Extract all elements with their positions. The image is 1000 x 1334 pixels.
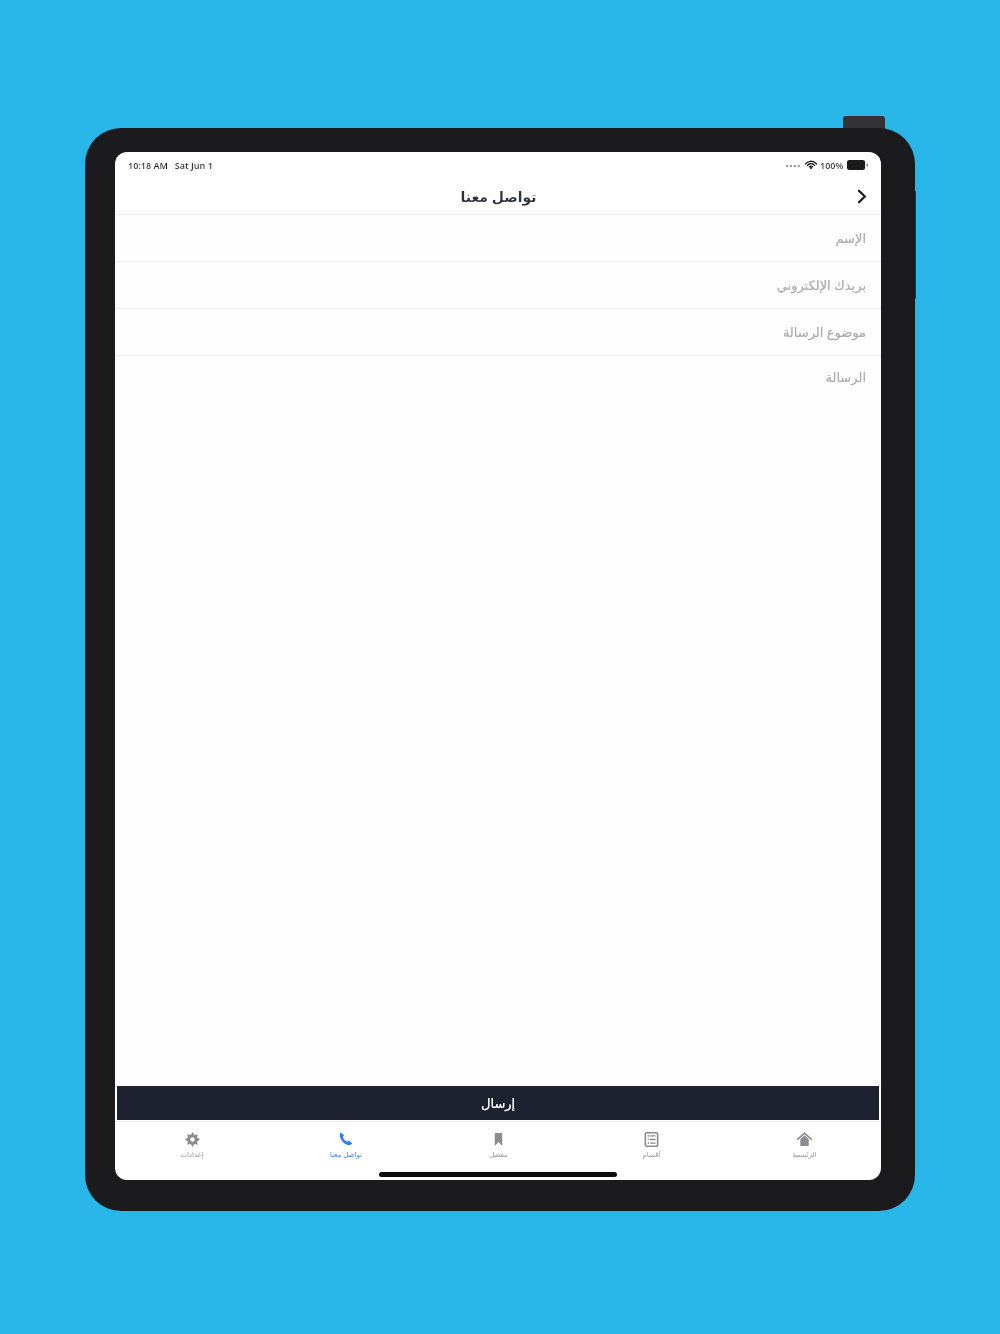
- staticText: مفضل: [489, 1151, 508, 1159]
- staticText: إعدادات: [180, 1151, 204, 1159]
- staticText: الرسالة: [825, 370, 866, 385]
- button[interactable]: بريدك الإلكتروني: [115, 262, 881, 308]
- button[interactable]: Back: [841, 178, 881, 214]
- button[interactable]: مفضل: [422, 1122, 575, 1168]
- button[interactable]: أقسام: [575, 1122, 728, 1168]
- staticText: موضوع الرسالة: [782, 323, 866, 341]
- staticText: الرئيسية: [792, 1151, 817, 1159]
- button[interactable]: الإسم: [115, 215, 881, 261]
- staticText: الإسم: [835, 231, 866, 246]
- staticText: 10:18 AM Sat Jun 1: [128, 159, 213, 171]
- staticText: بريدك الإلكتروني: [776, 276, 866, 294]
- button[interactable]: إرسال: [117, 1086, 879, 1120]
- button[interactable]: تواصل معنا: [269, 1122, 422, 1168]
- button[interactable]: إعدادات: [115, 1122, 269, 1168]
- button[interactable]: الرئيسية: [728, 1122, 881, 1168]
- staticText: أقسام: [642, 1151, 661, 1159]
- button[interactable]: موضوع الرسالة: [115, 309, 881, 355]
- staticText: إرسال: [481, 1096, 516, 1111]
- staticText: 100%: [820, 159, 844, 171]
- staticText: تواصل معنا: [460, 187, 537, 206]
- staticText: تواصل معنا: [330, 1150, 362, 1160]
